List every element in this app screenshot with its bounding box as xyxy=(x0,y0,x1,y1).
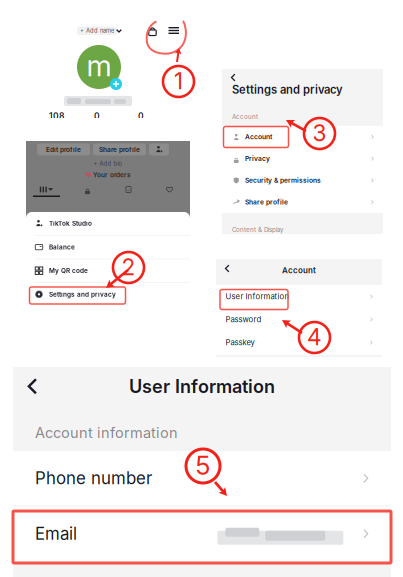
button[interactable]: Passkey xyxy=(216,331,382,354)
staticText: 1 xyxy=(174,67,183,95)
button[interactable] xyxy=(108,186,149,197)
staticText: 5 xyxy=(195,450,210,481)
button[interactable]: Settings and privacy xyxy=(26,283,190,306)
button[interactable] xyxy=(26,186,67,197)
staticText: Edit profile xyxy=(46,145,81,153)
staticText: Settings and privacy xyxy=(232,83,343,97)
staticText: + Add name xyxy=(80,27,114,34)
staticText: Phone number xyxy=(35,468,152,488)
button[interactable] xyxy=(149,186,190,197)
button[interactable]: Back xyxy=(227,71,240,84)
staticText: 108 xyxy=(49,111,64,121)
staticText: + Add bio xyxy=(93,160,122,167)
staticText: Email xyxy=(35,524,77,544)
button[interactable]: My QR code xyxy=(26,259,190,282)
staticText: m xyxy=(86,48,111,83)
staticText: Account information xyxy=(35,424,178,442)
staticText: TikTok Studio xyxy=(49,220,92,227)
staticText: Account xyxy=(282,265,316,275)
staticText: Share profile xyxy=(99,145,140,153)
button[interactable]: Balance xyxy=(26,236,190,259)
staticText: 0 xyxy=(94,111,100,121)
staticText: Passkey xyxy=(225,338,254,347)
staticText: User Information xyxy=(225,292,289,301)
staticText: User Information xyxy=(129,376,275,397)
button[interactable]: Back xyxy=(221,262,234,275)
button[interactable]: Share profile xyxy=(222,191,383,213)
button[interactable]: Edit profile xyxy=(37,143,90,155)
staticText: Account xyxy=(245,133,272,141)
staticText: Balance xyxy=(49,243,75,251)
button[interactable]: Privacy xyxy=(222,148,383,170)
button[interactable]: Account xyxy=(222,126,383,148)
staticText: 4 xyxy=(307,323,322,351)
button[interactable]: TikTok Studio xyxy=(26,212,190,235)
staticText: Password xyxy=(225,315,261,324)
button[interactable]: Password xyxy=(216,308,382,331)
staticText: 2 xyxy=(121,253,135,281)
staticText: Privacy xyxy=(245,155,270,163)
button[interactable]: Back xyxy=(21,374,45,398)
button[interactable]: Security & permissions xyxy=(222,169,383,191)
staticText: Your orders xyxy=(93,171,131,179)
staticText: Content & Display xyxy=(232,226,283,233)
staticText: Share profile xyxy=(245,198,288,206)
button[interactable]: Phone number xyxy=(13,451,391,505)
staticText: Account xyxy=(232,113,258,120)
button[interactable]: User Information xyxy=(216,285,382,308)
staticText: 0 xyxy=(138,111,144,121)
button[interactable]: Share profile xyxy=(93,143,146,155)
button[interactable]: + Add name xyxy=(77,26,117,35)
staticText: 3 xyxy=(312,119,326,147)
button[interactable]: Email xyxy=(13,506,391,561)
staticText: Settings and privacy xyxy=(49,290,116,298)
staticText: My QR code xyxy=(49,267,88,274)
button[interactable] xyxy=(67,186,108,197)
staticText: Security & permissions xyxy=(245,176,321,184)
